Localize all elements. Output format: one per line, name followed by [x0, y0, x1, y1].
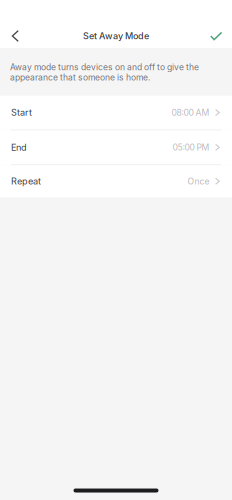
staticText: 05:00 PM: [172, 142, 209, 152]
button[interactable]: Start: [0, 96, 232, 129]
button[interactable]: Done: [201, 24, 232, 48]
staticText: Once: [187, 176, 209, 186]
staticText: Repeat: [11, 176, 41, 187]
button[interactable]: Back: [0, 23, 29, 49]
button[interactable]: Repeat: [0, 165, 232, 197]
staticText: 08:00 AM: [171, 107, 209, 118]
staticText: Start: [11, 107, 32, 118]
staticText: End: [11, 142, 27, 153]
staticText: Set Away Mode: [83, 30, 149, 41]
button[interactable]: End: [0, 130, 232, 164]
staticText: Away mode turns devices on and off to gi…: [10, 62, 199, 83]
